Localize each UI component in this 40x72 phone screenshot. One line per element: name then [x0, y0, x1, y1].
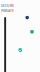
staticText: SECURE [1, 3, 14, 8]
staticText: PRIVATE [1, 9, 14, 13]
